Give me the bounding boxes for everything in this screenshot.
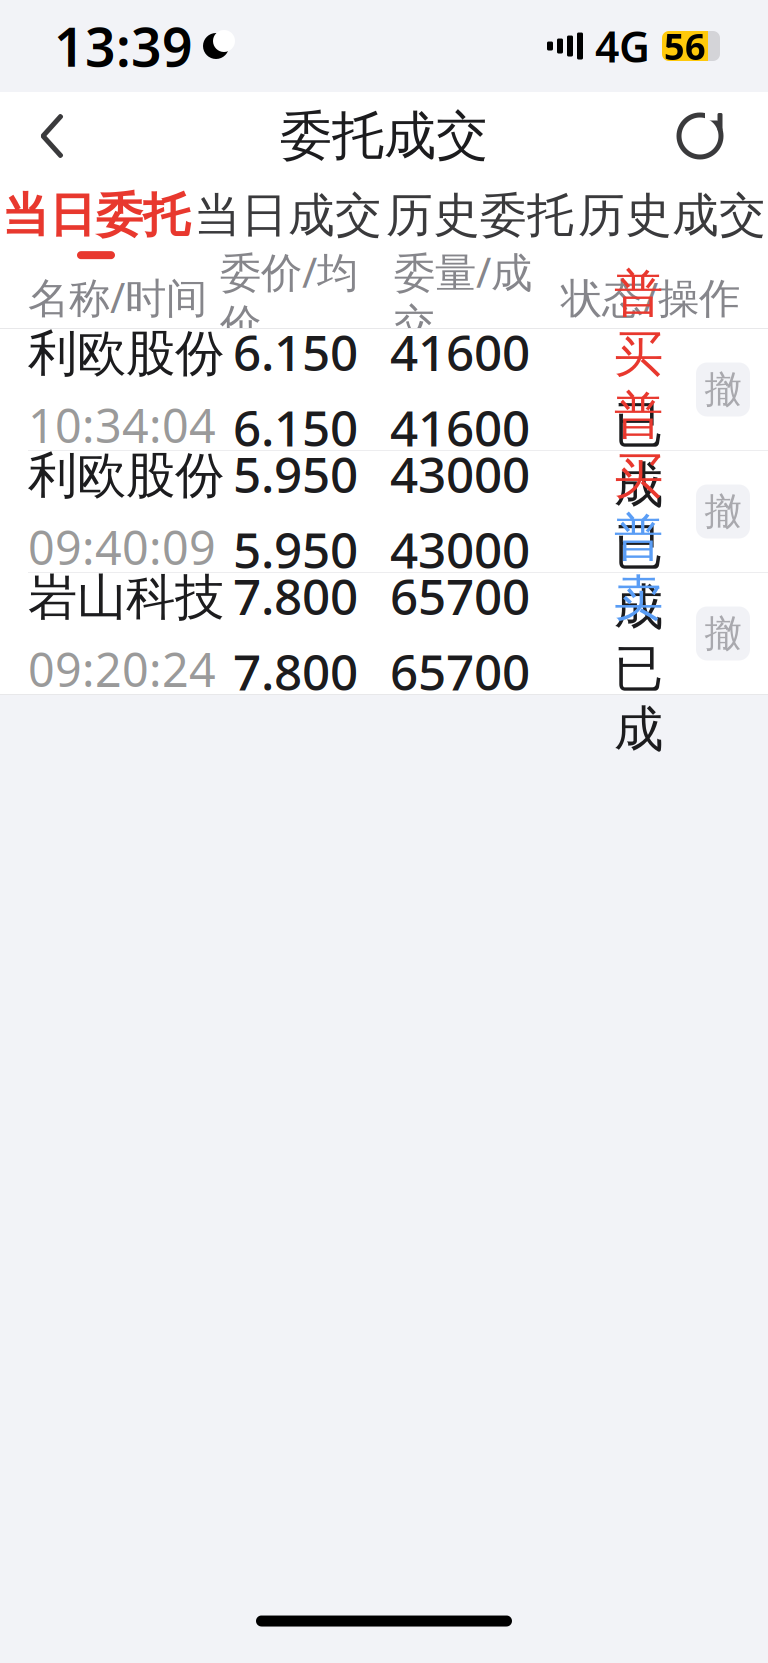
staticText: 已成 [614, 394, 663, 516]
staticText: 6.150 [233, 319, 358, 384]
staticText: 岩山科技 [28, 567, 224, 628]
staticText: 已成 [614, 516, 663, 638]
staticText: 7.800 [233, 638, 358, 704]
button[interactable]: 撤 [696, 484, 750, 538]
staticText: 利欧股份 [28, 445, 224, 506]
staticText: 65700 [390, 563, 530, 628]
staticText: 4G [595, 18, 650, 74]
staticText: 当日委托 [2, 187, 190, 244]
staticText: 撤 [704, 367, 741, 412]
staticText: 65700 [390, 638, 530, 704]
staticText: 43000 [390, 516, 530, 582]
staticText: 委量/成交 [394, 244, 532, 350]
staticText: 09:20:24 [28, 638, 216, 700]
staticText: 13:39 [54, 11, 193, 81]
staticText: 撤 [704, 489, 741, 534]
staticText: 41600 [390, 394, 530, 460]
button[interactable]: 刷新 [652, 92, 748, 180]
button[interactable]: 当日成交 [192, 180, 384, 266]
staticText: 7.800 [233, 563, 358, 628]
staticText: 43000 [390, 441, 530, 506]
button[interactable]: 利欧股份 [0, 329, 768, 450]
staticText: 普买 [614, 263, 663, 384]
button[interactable]: 撤 [696, 606, 750, 660]
button[interactable]: 岩山科技 [0, 573, 768, 694]
staticText: 09:40:09 [28, 516, 216, 578]
staticText: 撤 [704, 611, 741, 656]
button[interactable]: 历史成交 [576, 180, 768, 266]
staticText: 41600 [390, 319, 530, 384]
staticText: 5.950 [233, 441, 358, 506]
staticText: 已成 [614, 638, 663, 760]
staticText: 状态/操作 [561, 270, 740, 324]
staticText: 普买 [614, 385, 663, 506]
staticText: 委托成交 [280, 104, 488, 168]
staticText: 利欧股份 [28, 323, 224, 384]
staticText: 当日成交 [194, 187, 382, 244]
button[interactable]: 利欧股份 [0, 451, 768, 572]
staticText: 历史成交 [578, 187, 766, 244]
button[interactable]: 当日委托 [0, 180, 192, 266]
button[interactable]: 历史委托 [384, 180, 576, 266]
staticText: 普卖 [614, 507, 663, 628]
staticText: 56 [664, 22, 706, 70]
button[interactable]: 撤 [696, 362, 750, 416]
staticText: 6.150 [233, 394, 358, 460]
button[interactable]: 返回 [4, 92, 100, 180]
staticText: 历史委托 [386, 187, 574, 244]
staticText: 名称/时间 [28, 270, 207, 324]
staticText: 5.950 [233, 516, 358, 582]
staticText: 委价/均价 [220, 244, 358, 350]
staticText: 10:34:04 [28, 394, 216, 456]
